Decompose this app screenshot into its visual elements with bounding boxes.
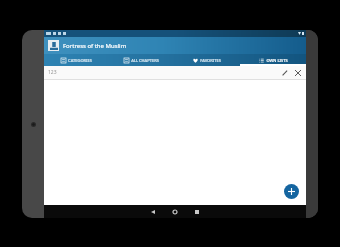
button[interactable]: Back: [142, 205, 164, 218]
button[interactable]: Edit: [280, 68, 289, 77]
staticText: CATEGORIES: [68, 58, 92, 63]
button[interactable]: Close: [293, 68, 302, 77]
button[interactable]: FAVORITES: [174, 54, 240, 66]
button[interactable]: Home: [164, 205, 186, 218]
staticText: 123: [48, 69, 57, 76]
staticText: Fortress of the Muslim: [63, 42, 127, 50]
button[interactable]: Add: [284, 184, 299, 199]
button[interactable]: Recent apps: [186, 205, 208, 218]
staticText: FAVORITES: [200, 58, 221, 63]
staticText: ALL CHAPTERS: [131, 58, 159, 63]
staticText: OWN LISTS: [266, 58, 288, 63]
button[interactable]: OWN LISTS: [240, 54, 306, 66]
button[interactable]: CATEGORIES: [44, 54, 109, 66]
button[interactable]: ALL CHAPTERS: [109, 54, 174, 66]
